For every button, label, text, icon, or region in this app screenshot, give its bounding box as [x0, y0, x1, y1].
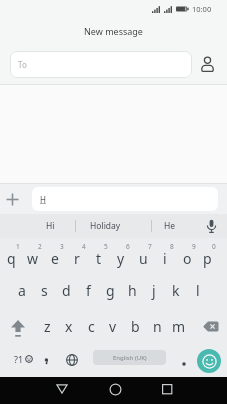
button[interactable]: g — [99, 271, 121, 303]
staticText: To — [18, 59, 27, 70]
staticText: r — [74, 249, 80, 268]
button[interactable] — [197, 349, 221, 373]
button[interactable] — [64, 348, 80, 372]
staticText: v — [109, 317, 117, 336]
staticText: c — [88, 317, 95, 336]
staticText: y — [117, 249, 125, 268]
staticText: m — [172, 317, 186, 336]
button[interactable]: o — [176, 238, 198, 271]
button[interactable]: a — [11, 271, 33, 303]
staticText: o — [183, 249, 192, 268]
staticText: z — [44, 317, 51, 336]
button[interactable]: Holiday — [85, 214, 125, 238]
staticText: H — [40, 194, 46, 205]
staticText: b — [131, 317, 140, 336]
button[interactable]: y — [110, 238, 132, 271]
button[interactable]: b — [124, 303, 146, 337]
staticText: 4 — [82, 242, 86, 251]
button[interactable] — [176, 348, 192, 372]
button[interactable]: z — [36, 303, 58, 337]
button[interactable]: v — [102, 303, 124, 337]
staticText: i — [163, 249, 167, 268]
staticText: a — [18, 281, 26, 300]
staticText: 2 — [38, 242, 42, 251]
button[interactable]: c — [80, 303, 102, 337]
staticText: Hi — [46, 220, 55, 232]
staticText: k — [172, 281, 180, 300]
staticText: g — [106, 281, 115, 300]
staticText: p — [203, 249, 212, 268]
button[interactable]: x — [58, 303, 80, 337]
button[interactable]: u — [132, 238, 154, 271]
staticText: English (UK) — [113, 354, 147, 362]
button[interactable] — [0, 303, 36, 337]
staticText: New message — [84, 25, 143, 37]
staticText: w — [27, 249, 39, 268]
staticText: u — [139, 249, 148, 268]
button[interactable]: ?1 — [11, 347, 35, 371]
staticText: d — [62, 281, 71, 300]
button[interactable]: l — [187, 271, 209, 303]
staticText: 5 — [104, 242, 108, 251]
button[interactable]: k — [165, 271, 187, 303]
staticText: t — [96, 249, 102, 268]
button[interactable]: H — [32, 187, 218, 211]
button[interactable]: He — [155, 214, 185, 238]
button[interactable] — [38, 345, 54, 369]
staticText: 9 — [192, 242, 196, 251]
staticText: 0 — [212, 242, 216, 251]
button[interactable]: m — [168, 303, 190, 337]
button[interactable] — [190, 303, 227, 337]
staticText: 10:00 — [192, 4, 212, 14]
button[interactable]: d — [55, 271, 77, 303]
staticText: q — [7, 249, 16, 268]
staticText: 7 — [148, 242, 152, 251]
button[interactable]: t — [88, 238, 110, 271]
button[interactable] — [6, 193, 19, 206]
button[interactable]: w — [22, 238, 44, 271]
staticText: f — [86, 281, 91, 300]
staticText: 3 — [60, 242, 64, 251]
staticText: l — [196, 281, 200, 300]
button[interactable]: f — [77, 271, 99, 303]
staticText: s — [41, 281, 48, 300]
staticText: 1 — [16, 242, 20, 251]
button[interactable]: s — [33, 271, 55, 303]
staticText: He — [164, 220, 176, 232]
staticText: x — [65, 317, 73, 336]
button[interactable] — [155, 377, 179, 401]
staticText: ?1 — [14, 353, 24, 365]
button[interactable]: n — [146, 303, 168, 337]
staticText: h — [128, 281, 137, 300]
button[interactable]: English (UK) — [93, 350, 166, 365]
staticText: 8 — [170, 242, 174, 251]
button[interactable]: q — [0, 238, 22, 271]
staticText: e — [51, 249, 59, 268]
staticText: n — [153, 317, 162, 336]
button[interactable]: r — [66, 238, 88, 271]
button[interactable] — [200, 56, 215, 72]
button[interactable] — [50, 377, 74, 401]
button[interactable]: h — [121, 271, 143, 303]
staticText: Holiday — [90, 220, 121, 232]
button[interactable] — [206, 219, 217, 234]
button[interactable]: To — [10, 51, 192, 78]
button[interactable] — [103, 377, 127, 401]
button[interactable]: j — [143, 271, 165, 303]
button[interactable]: i — [154, 238, 176, 271]
button[interactable]: e — [44, 238, 66, 271]
staticText: 6 — [126, 242, 130, 251]
button[interactable]: Hi — [34, 214, 66, 238]
staticText: j — [152, 281, 156, 300]
button[interactable]: p — [198, 238, 216, 271]
